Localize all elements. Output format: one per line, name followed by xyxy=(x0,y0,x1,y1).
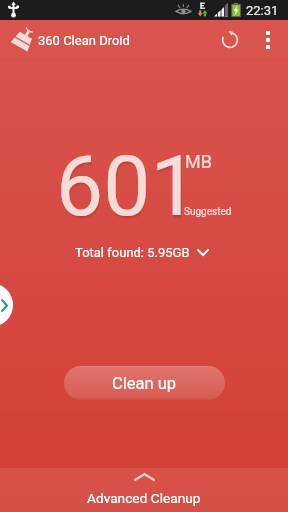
button[interactable]: More options xyxy=(252,20,284,60)
button[interactable]: Advanced Cleanup xyxy=(0,468,288,512)
staticText: 22:31 xyxy=(246,3,279,18)
staticText: Total found: 5.95GB xyxy=(75,245,190,260)
staticText: Suggested xyxy=(184,206,232,218)
button[interactable]: Open side panel xyxy=(0,283,13,327)
staticText: 601 xyxy=(56,138,198,236)
staticText: 601 xyxy=(57,139,199,237)
staticText: Clean up xyxy=(112,374,177,393)
staticText: 360 Clean Droid xyxy=(38,33,130,48)
button[interactable]: Clean up xyxy=(64,366,225,400)
button[interactable]: Refresh xyxy=(214,20,252,60)
staticText: Advanced Cleanup xyxy=(87,490,201,506)
staticText: 601 xyxy=(57,140,199,238)
staticText: MB xyxy=(185,151,212,172)
button[interactable]: Total found: 5.95GB xyxy=(69,242,215,263)
staticText: 601 xyxy=(56,137,198,235)
